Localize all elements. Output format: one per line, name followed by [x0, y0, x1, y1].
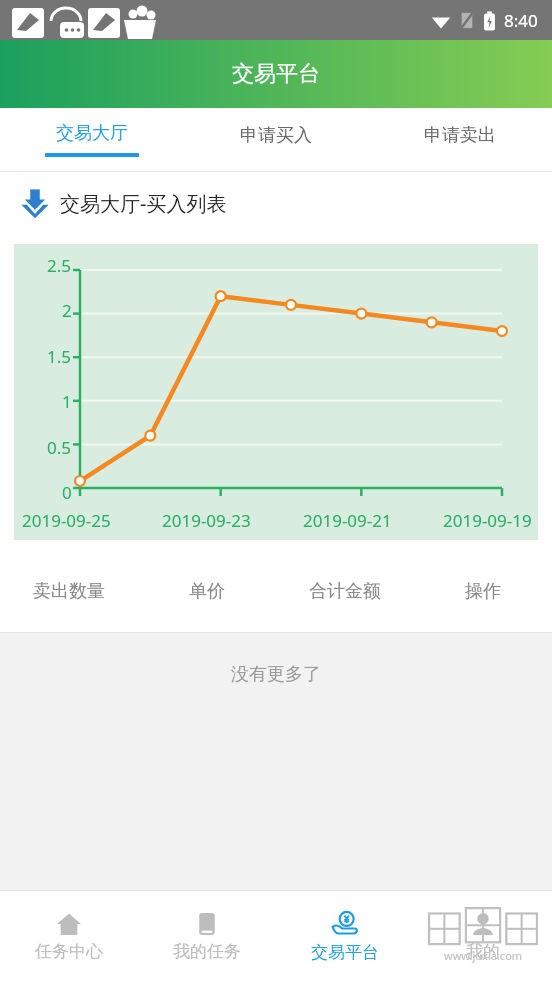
staticText: 1 — [62, 390, 72, 413]
staticText: 8:40 — [504, 9, 538, 32]
staticText: 我的 — [466, 941, 500, 962]
other: 交易平台 — [331, 910, 359, 938]
staticText: 1.5 — [47, 345, 72, 368]
staticText: 申请买入 — [240, 124, 312, 147]
button[interactable]: 我的任务 — [138, 891, 276, 981]
staticText: 2.5 — [47, 254, 72, 277]
button[interactable]: 任务中心 — [0, 891, 138, 981]
staticText: 交易平台 — [311, 942, 379, 963]
staticText: 2019-09-23 — [162, 509, 251, 532]
other: 任务中心 — [56, 911, 82, 937]
staticText: 2019-09-19 — [443, 509, 532, 532]
staticText: 没有更多了 — [231, 663, 321, 686]
staticText: 交易大厅-买入列表 — [60, 190, 227, 217]
staticText: 2 — [62, 299, 72, 322]
other: 我的 — [470, 911, 496, 937]
staticText: 合计金额 — [309, 580, 381, 603]
staticText: 0.5 — [47, 436, 72, 459]
button[interactable]: 交易平台 — [276, 891, 414, 981]
staticText: 交易平台 — [232, 60, 320, 88]
button[interactable]: 我的 — [414, 891, 552, 981]
staticText: 申请卖出 — [424, 124, 496, 147]
staticText: 我的任务 — [173, 941, 241, 962]
button[interactable]: 申请买入 — [184, 108, 368, 171]
staticText: www.juxia.com — [444, 948, 523, 963]
staticText: 单价 — [189, 580, 225, 603]
staticText: 操作 — [465, 580, 501, 603]
staticText: 任务中心 — [35, 941, 103, 962]
staticText: 2019-09-21 — [303, 509, 392, 532]
other: 我的任务 — [194, 911, 220, 937]
staticText: 0 — [62, 481, 72, 504]
staticText: 2019-09-25 — [22, 509, 111, 532]
button[interactable]: 申请卖出 — [368, 108, 552, 171]
staticText: 交易大厅 — [56, 122, 128, 145]
staticText: 卖出数量 — [33, 580, 105, 603]
button[interactable]: 交易大厅 — [0, 108, 184, 171]
